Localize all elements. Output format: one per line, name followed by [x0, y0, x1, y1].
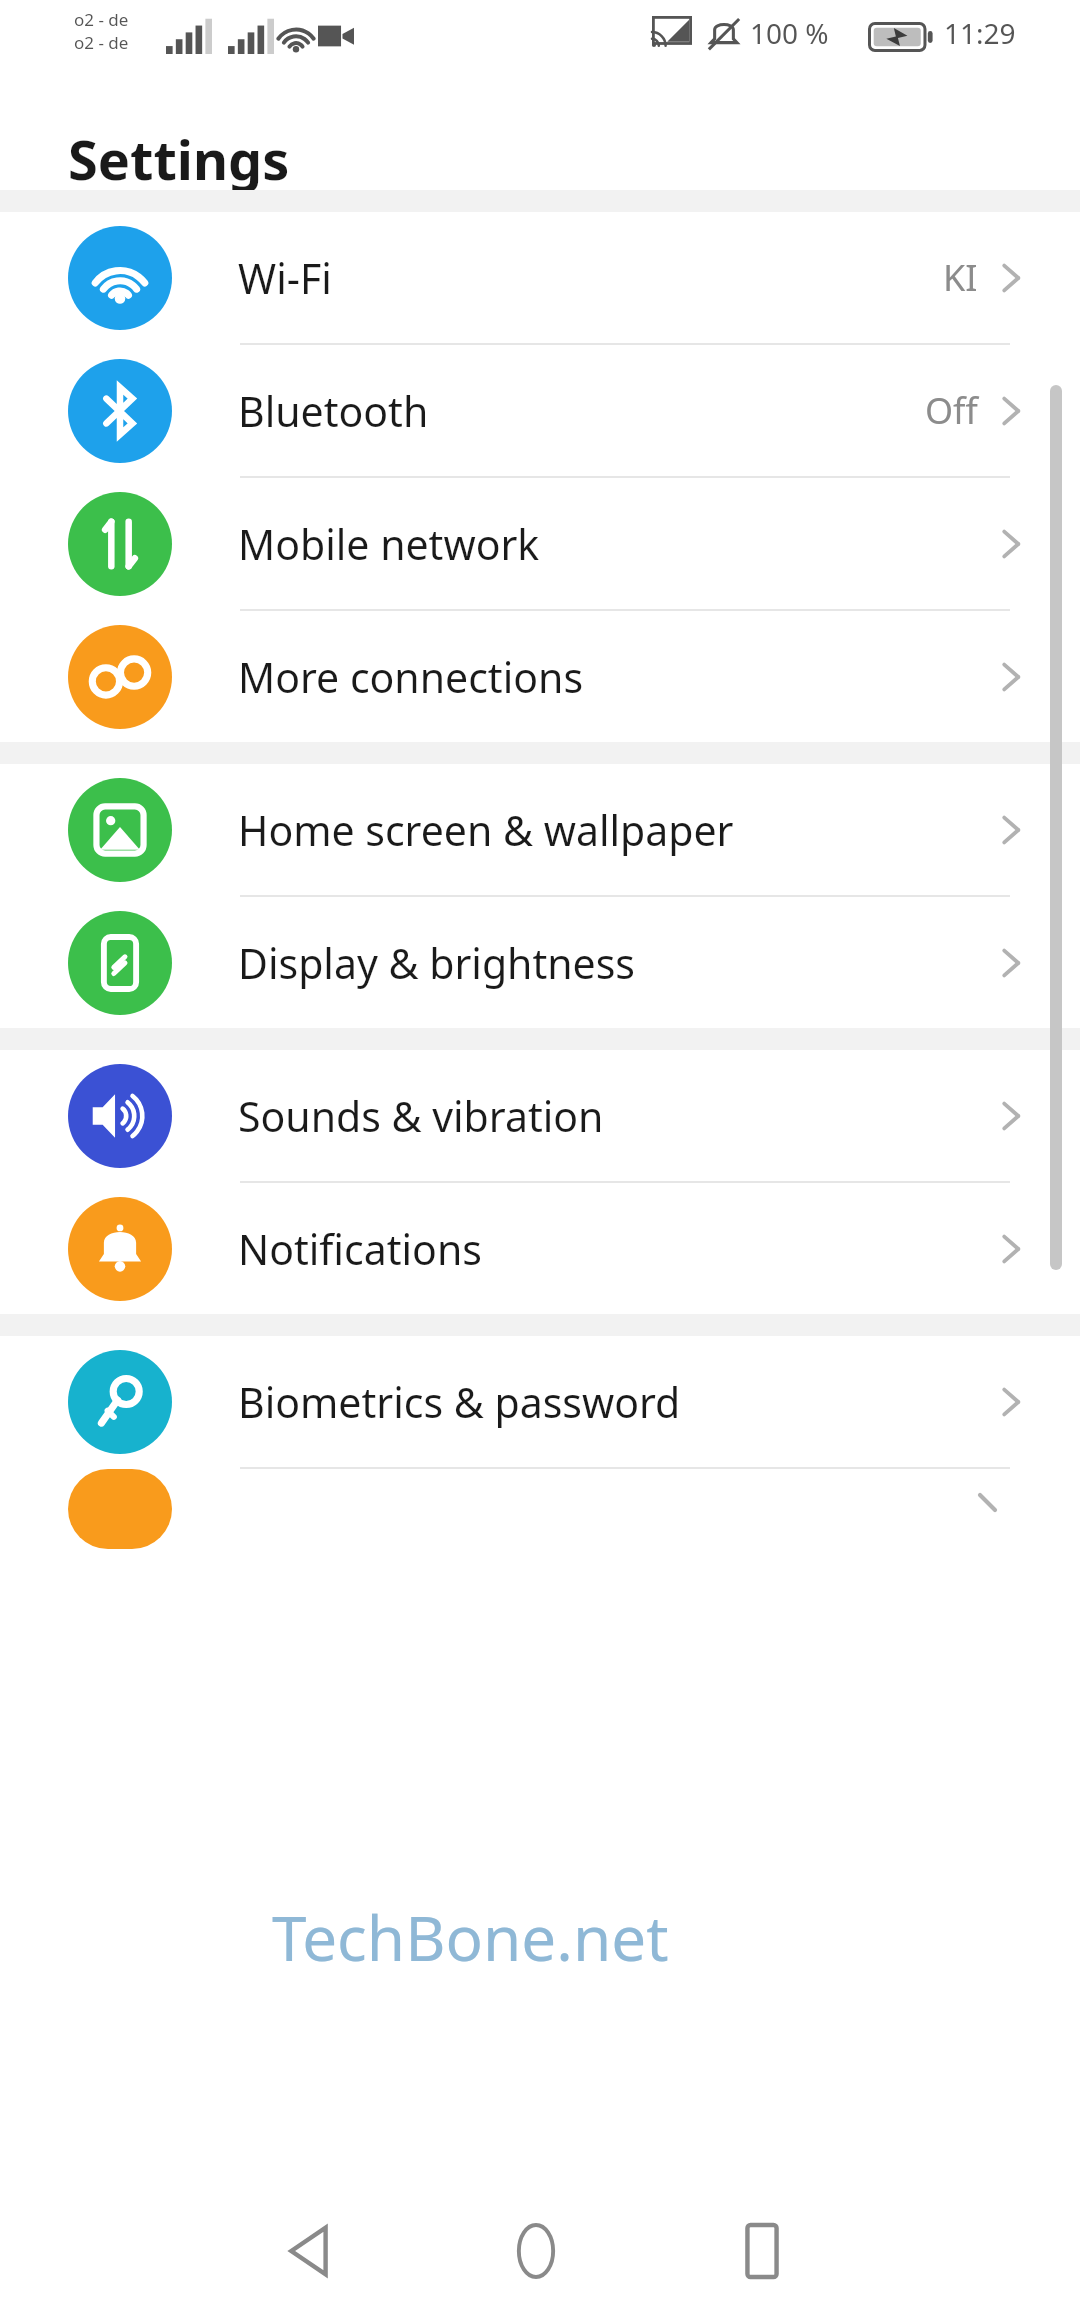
staticText: Bluetooth [238, 383, 429, 439]
button[interactable]: Sounds & vibration [0, 1050, 1080, 1181]
staticText: Off [925, 386, 978, 435]
staticText: Display & brightness [238, 935, 636, 991]
staticText: o2 - de [74, 31, 129, 54]
staticText: Sounds & vibration [238, 1088, 604, 1144]
staticText: Biometrics & password [238, 1374, 681, 1430]
staticText: 11:29 [944, 14, 1016, 52]
button[interactable]: Biometrics & password [0, 1336, 1080, 1467]
staticText: More connections [238, 649, 584, 705]
button[interactable] [0, 1469, 1080, 1549]
staticText: o2 - de [74, 8, 129, 31]
staticText: Mobile network [238, 516, 540, 572]
staticText: Notifications [238, 1221, 482, 1277]
staticText: Wi-Fi [238, 250, 332, 306]
button[interactable]: Mobile network [0, 478, 1080, 609]
button[interactable]: Notifications [0, 1183, 1080, 1314]
staticText: TechBone.net [272, 1895, 669, 1979]
button[interactable]: Back [245, 2190, 375, 2312]
button[interactable]: Home screen & wallpaper [0, 764, 1080, 895]
button[interactable]: Home [471, 2190, 601, 2312]
staticText: Settings [68, 122, 290, 196]
button[interactable]: Recent apps [697, 2190, 827, 2312]
staticText: 100 % [750, 14, 829, 52]
button[interactable]: Bluetooth [0, 345, 1080, 476]
staticText: KI [943, 253, 978, 302]
button[interactable]: Wi-Fi [0, 212, 1080, 343]
staticText: Home screen & wallpaper [238, 802, 734, 858]
button[interactable]: Display & brightness [0, 897, 1080, 1028]
button[interactable]: More connections [0, 611, 1080, 742]
